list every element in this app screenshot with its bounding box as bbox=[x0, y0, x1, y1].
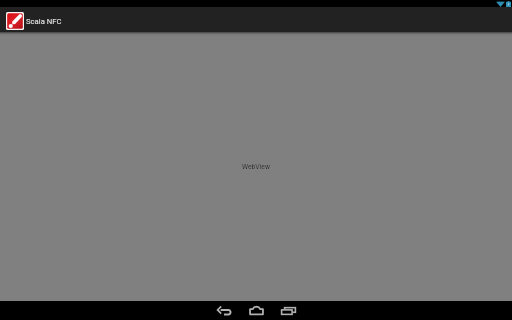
button[interactable]: Scala NFC bbox=[0, 11, 62, 31]
button[interactable]: Back bbox=[208, 301, 240, 320]
staticText: WebView bbox=[242, 163, 271, 171]
button[interactable]: Home bbox=[240, 301, 272, 320]
staticText: Scala NFC bbox=[26, 17, 62, 26]
button[interactable]: Recent apps bbox=[272, 301, 304, 320]
